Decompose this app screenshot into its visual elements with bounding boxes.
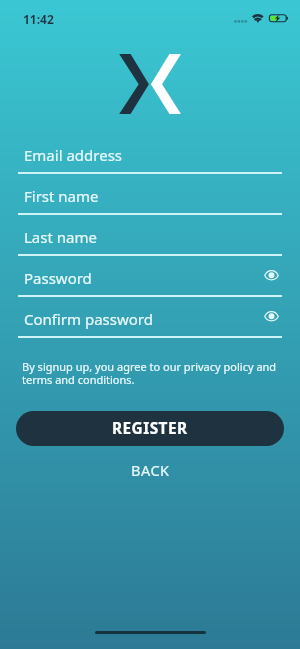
button[interactable]: REGISTER: [16, 411, 284, 446]
staticText: Confirm password: [24, 309, 153, 329]
staticText: REGISTER: [112, 418, 188, 439]
button[interactable]: BACK: [109, 455, 192, 485]
button[interactable]: Confirm password: [18, 302, 282, 338]
button[interactable]: Show password: [260, 305, 282, 327]
staticText: BACK: [131, 460, 170, 480]
button[interactable]: Password: [18, 261, 282, 297]
staticText: Password: [24, 268, 92, 288]
button[interactable]: Email address: [18, 138, 282, 174]
staticText: Email address: [24, 145, 123, 165]
staticText: Last name: [24, 227, 97, 247]
staticText: 11:42: [23, 11, 54, 27]
staticText: First name: [24, 186, 99, 206]
button[interactable]: Show password: [260, 264, 282, 286]
button[interactable]: Last name: [18, 220, 282, 256]
other: App logo: [119, 54, 181, 114]
staticText: By signup up, you agree to our privacy p…: [22, 359, 280, 387]
button[interactable]: First name: [18, 179, 282, 215]
